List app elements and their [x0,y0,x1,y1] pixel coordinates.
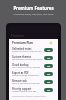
staticText: Premium Features [13,5,54,11]
staticText: Personalise colours and fonts [12,58,43,61]
button[interactable]: Unlimited notes [12,46,53,54]
staticText: Priority support [12,87,32,90]
staticText: Answers within one day [12,90,37,93]
staticText: Enjoy a distraction free app [12,82,40,85]
staticText: Remove ads [12,79,27,82]
staticText: Share polished documents [12,74,40,77]
button[interactable]: Remove ads [12,78,53,86]
staticText: Unlimited notes [12,47,32,50]
button[interactable]: Export as PDF [12,70,53,78]
staticText: Custom themes [12,55,32,58]
staticText: Get [47,73,51,76]
staticText: Subscription renews automatically [12,95,46,98]
staticText: Create as many notes as you need [12,50,43,53]
staticText: Export as PDF [12,71,29,74]
staticText: Get [47,89,51,92]
button[interactable]: Custom themes [12,54,53,62]
button[interactable]: Priority support [12,86,53,94]
staticText: Get [47,81,51,84]
button[interactable]: Cloud backup [12,62,53,70]
other: Premium badge [49,41,53,45]
staticText: Get [47,49,51,52]
staticText: Premium Plan [12,41,33,45]
staticText: Get [47,57,51,60]
staticText: Premium [11,34,24,38]
staticText: Unlimited notes, shortcuts, and more [13,13,54,16]
staticText: Cloud backup [12,63,29,66]
staticText: Get [47,65,51,68]
staticText: Sync across all your devices [12,66,41,69]
